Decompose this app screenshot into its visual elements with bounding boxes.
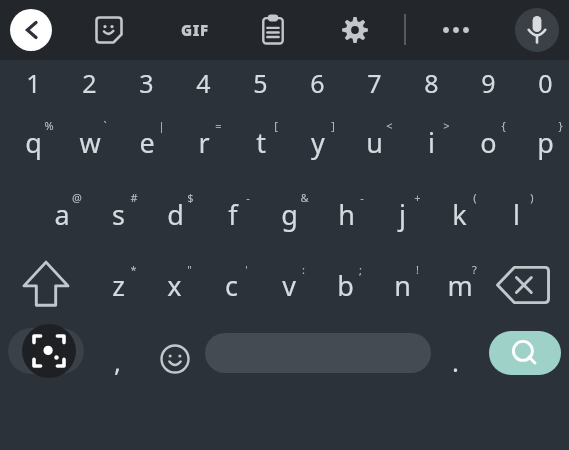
button[interactable]: x (146, 250, 203, 320)
staticText: ?123 (28, 340, 65, 363)
staticText: , (114, 344, 121, 379)
button[interactable]: Google Lens (22, 324, 76, 378)
staticText: @ (72, 190, 82, 205)
staticText: s (112, 196, 125, 233)
staticText: " (187, 262, 192, 277)
button[interactable]: 0 (517, 60, 569, 106)
button[interactable]: r (175, 106, 232, 178)
staticText: t (256, 124, 266, 161)
staticText: [ (274, 118, 278, 133)
staticText: ] (331, 118, 335, 133)
staticText: ! (416, 262, 419, 277)
button[interactable]: j (374, 178, 431, 250)
staticText: d (167, 196, 184, 233)
button[interactable]: y (289, 106, 346, 178)
button[interactable]: Space (205, 333, 431, 373)
button[interactable]: n (374, 250, 431, 320)
button[interactable]: o (460, 106, 517, 178)
button[interactable]: a (33, 178, 90, 250)
button[interactable]: , (93, 320, 141, 402)
button[interactable]: Symbols (8, 328, 84, 374)
staticText: y (311, 124, 325, 161)
button[interactable]: s (90, 178, 147, 250)
button[interactable]: 8 (403, 60, 460, 106)
staticText: 7 (367, 66, 382, 100)
button[interactable]: 4 (175, 60, 232, 106)
button[interactable]: v (260, 250, 317, 320)
staticText: 5 (253, 66, 268, 100)
button[interactable]: t (232, 106, 289, 178)
button[interactable]: Clipboard (252, 9, 294, 51)
staticText: g (281, 196, 298, 233)
button[interactable]: f (204, 178, 261, 250)
button[interactable]: l (488, 178, 545, 250)
staticText: v (282, 267, 296, 304)
button[interactable]: i (403, 106, 460, 178)
staticText: $ (187, 190, 194, 205)
staticText: b (337, 267, 354, 304)
button[interactable]: 7 (346, 60, 403, 106)
staticText: c (225, 267, 238, 304)
button[interactable]: Stickers (88, 9, 130, 51)
button[interactable]: h (318, 178, 375, 250)
button[interactable]: 9 (460, 60, 517, 106)
button[interactable]: GIF (170, 9, 220, 51)
staticText: ( (473, 190, 477, 205)
button[interactable]: p (517, 106, 569, 178)
staticText: % (44, 118, 54, 133)
staticText: - (360, 190, 364, 205)
button[interactable]: w (61, 106, 118, 178)
staticText: w (79, 124, 101, 161)
staticText: < (386, 118, 393, 133)
button[interactable]: Voice input (515, 8, 559, 52)
staticText: 6 (310, 66, 325, 100)
staticText: 4 (196, 66, 211, 100)
staticText: j (399, 196, 406, 233)
staticText: > (443, 118, 450, 133)
button[interactable]: Search (489, 331, 561, 375)
button[interactable]: e (118, 106, 175, 178)
button[interactable]: Shift (8, 250, 84, 320)
button[interactable]: k (431, 178, 488, 250)
button[interactable]: g (261, 178, 318, 250)
staticText: . (452, 344, 459, 379)
staticText: # (130, 190, 138, 205)
button[interactable]: b (317, 250, 374, 320)
staticText: k (452, 196, 467, 233)
staticText: p (537, 124, 554, 161)
staticText: 1 (26, 66, 41, 100)
button[interactable]: u (346, 106, 403, 178)
staticText: l (513, 196, 520, 233)
button[interactable]: Backspace (485, 250, 561, 320)
staticText: ? (472, 262, 477, 277)
staticText: x (167, 267, 182, 304)
staticText: a (54, 196, 70, 233)
staticText: i (428, 124, 435, 161)
staticText: r (198, 124, 210, 161)
staticText: * (130, 262, 137, 277)
button[interactable]: Back (10, 9, 52, 51)
staticText: - (246, 190, 250, 205)
staticText: | (158, 118, 165, 133)
staticText: m (447, 267, 473, 304)
button[interactable]: z (90, 250, 147, 320)
button[interactable]: 5 (232, 60, 289, 106)
staticText: } (558, 118, 563, 133)
button[interactable]: d (147, 178, 204, 250)
button[interactable]: . (434, 320, 476, 402)
button[interactable]: 3 (118, 60, 175, 106)
button[interactable]: c (203, 250, 260, 320)
staticText: 9 (481, 66, 496, 100)
button[interactable]: q (5, 106, 62, 178)
button[interactable]: 1 (5, 60, 62, 106)
button[interactable]: 2 (61, 60, 118, 106)
staticText: 3 (139, 66, 154, 100)
button[interactable]: m (431, 250, 488, 320)
button[interactable]: Settings (334, 9, 376, 51)
button[interactable]: More options (434, 9, 478, 51)
staticText: q (25, 124, 42, 161)
staticText: u (366, 124, 383, 161)
button[interactable]: Emoji (150, 320, 200, 402)
button[interactable]: 6 (289, 60, 346, 106)
staticText: GIF (181, 20, 209, 40)
